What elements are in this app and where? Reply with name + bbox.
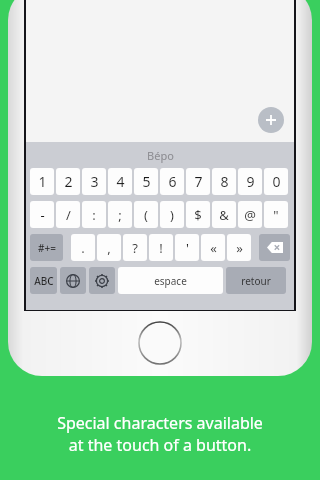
staticText: : (92, 206, 96, 224)
staticText: ) (170, 206, 174, 224)
staticText: 0 (272, 172, 281, 191)
staticText: espace (154, 274, 187, 288)
button[interactable]: @ (238, 201, 262, 228)
staticText: 6 (168, 172, 177, 191)
staticText: « (210, 239, 217, 257)
button[interactable]: ? (123, 234, 147, 261)
button[interactable]: : (82, 201, 106, 228)
button[interactable]: / (56, 201, 80, 228)
staticText: #+= (38, 241, 56, 255)
button[interactable]: espace (118, 267, 223, 294)
staticText: , (107, 239, 111, 257)
button[interactable]: 0 (264, 168, 288, 195)
staticText: ABC (34, 274, 54, 288)
button[interactable]: #+= (30, 234, 63, 261)
staticText: » (236, 239, 243, 257)
staticText: 4 (116, 172, 125, 191)
staticText: Special characters available at the touc… (57, 412, 263, 456)
staticText: ' (186, 239, 189, 257)
button[interactable]: Change keyboard (60, 267, 86, 294)
button[interactable]: » (227, 234, 251, 261)
staticText: - (40, 206, 45, 224)
button[interactable]: 9 (238, 168, 262, 195)
button[interactable]: 6 (160, 168, 184, 195)
staticText: 9 (246, 172, 255, 191)
button[interactable]: 5 (134, 168, 158, 195)
button[interactable]: . (71, 234, 95, 261)
button[interactable]: « (201, 234, 225, 261)
button[interactable]: $ (186, 201, 210, 228)
button[interactable]: Add (258, 107, 284, 133)
staticText: & (219, 206, 229, 224)
staticText: / (66, 206, 71, 224)
button[interactable]: 1 (30, 168, 54, 195)
staticText: . (81, 239, 85, 257)
button[interactable]: 7 (186, 168, 210, 195)
button[interactable]: " (264, 201, 288, 228)
button[interactable]: ) (160, 201, 184, 228)
staticText: " (273, 206, 279, 224)
button[interactable]: 4 (108, 168, 132, 195)
button[interactable]: Settings (89, 267, 115, 294)
staticText: ? (132, 239, 138, 257)
staticText: retour (241, 274, 271, 288)
button[interactable]: - (30, 201, 54, 228)
button[interactable]: Backspace (259, 234, 290, 261)
staticText: 3 (90, 172, 99, 191)
staticText: 2 (64, 172, 73, 191)
button[interactable]: ' (175, 234, 199, 261)
button[interactable]: retour (226, 267, 286, 294)
button[interactable]: , (97, 234, 121, 261)
button[interactable]: 3 (82, 168, 106, 195)
button[interactable]: ( (134, 201, 158, 228)
staticText: Bépo (147, 148, 174, 163)
staticText: 5 (142, 172, 151, 191)
staticText: ; (118, 206, 122, 224)
staticText: @ (244, 206, 256, 224)
button[interactable]: ABC (30, 267, 57, 294)
button[interactable]: & (212, 201, 236, 228)
staticText: ( (144, 206, 148, 224)
staticText: 8 (220, 172, 229, 191)
button[interactable]: 2 (56, 168, 80, 195)
button[interactable]: ! (149, 234, 173, 261)
button[interactable]: ; (108, 201, 132, 228)
staticText: 7 (194, 172, 203, 191)
button[interactable]: 8 (212, 168, 236, 195)
staticText: ! (159, 239, 163, 257)
staticText: $ (194, 206, 202, 224)
staticText: 1 (38, 172, 47, 191)
